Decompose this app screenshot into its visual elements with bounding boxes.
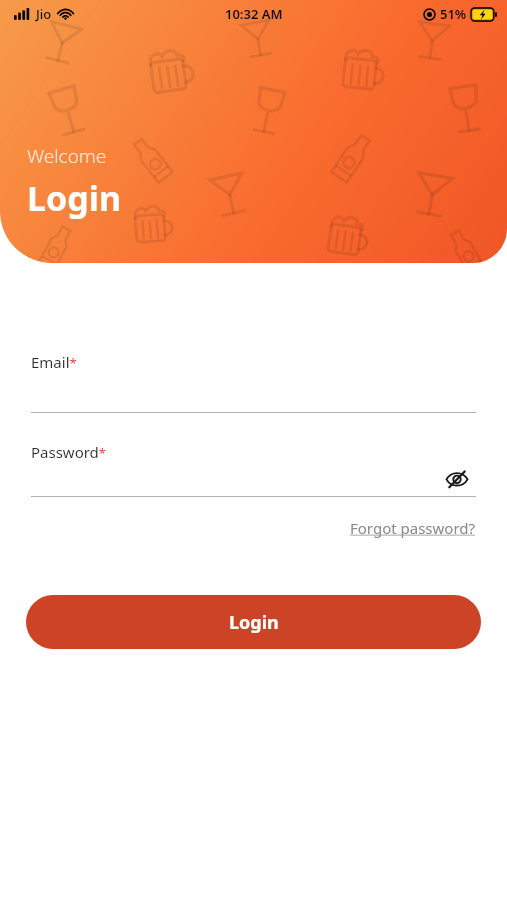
staticText: 51% — [440, 5, 467, 23]
button[interactable]: Show password — [438, 462, 476, 496]
staticText: Password* — [31, 442, 107, 462]
button[interactable]: Forgot password? — [346, 514, 480, 542]
staticText: Welcome — [27, 143, 107, 169]
staticText: Jio — [36, 5, 52, 23]
button[interactable]: Login — [26, 595, 481, 649]
staticText: Login — [229, 610, 279, 635]
staticText: Login — [27, 175, 122, 221]
staticText: Forgot password? — [350, 518, 476, 538]
staticText: Email* — [31, 352, 77, 372]
staticText: 10:32 AM — [225, 5, 283, 23]
